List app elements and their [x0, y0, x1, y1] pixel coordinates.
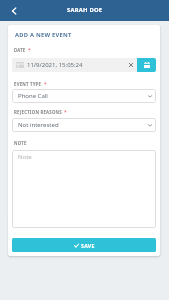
button[interactable]: SAVE	[12, 238, 156, 252]
button[interactable]: Clear date	[126, 58, 136, 72]
staticText: *	[64, 109, 67, 116]
button[interactable]: Phone Call	[12, 89, 156, 103]
button[interactable]: 11/9/2021, 15:05:24	[12, 58, 137, 72]
button[interactable]: Back	[4, 0, 24, 21]
staticText: REJECTION REASONS	[14, 109, 62, 115]
button[interactable]: Note	[12, 150, 156, 228]
staticText: Note	[18, 153, 32, 161]
staticText: Not interested	[18, 121, 59, 129]
staticText: SARAH DOE	[67, 6, 103, 14]
staticText: *	[28, 47, 31, 54]
button[interactable]: Not interested	[12, 118, 156, 132]
staticText: NOTE	[14, 140, 27, 146]
staticText: DATE	[14, 47, 26, 53]
staticText: 11/9/2021, 15:05:24	[27, 61, 83, 69]
staticText: EVENT TYPE	[14, 81, 42, 87]
staticText: SAVE	[81, 242, 95, 249]
staticText: ADD A NEW EVENT	[15, 31, 72, 39]
button[interactable]: Open calendar	[137, 58, 156, 72]
staticText: Phone Call	[18, 92, 48, 100]
staticText: *	[44, 81, 47, 88]
